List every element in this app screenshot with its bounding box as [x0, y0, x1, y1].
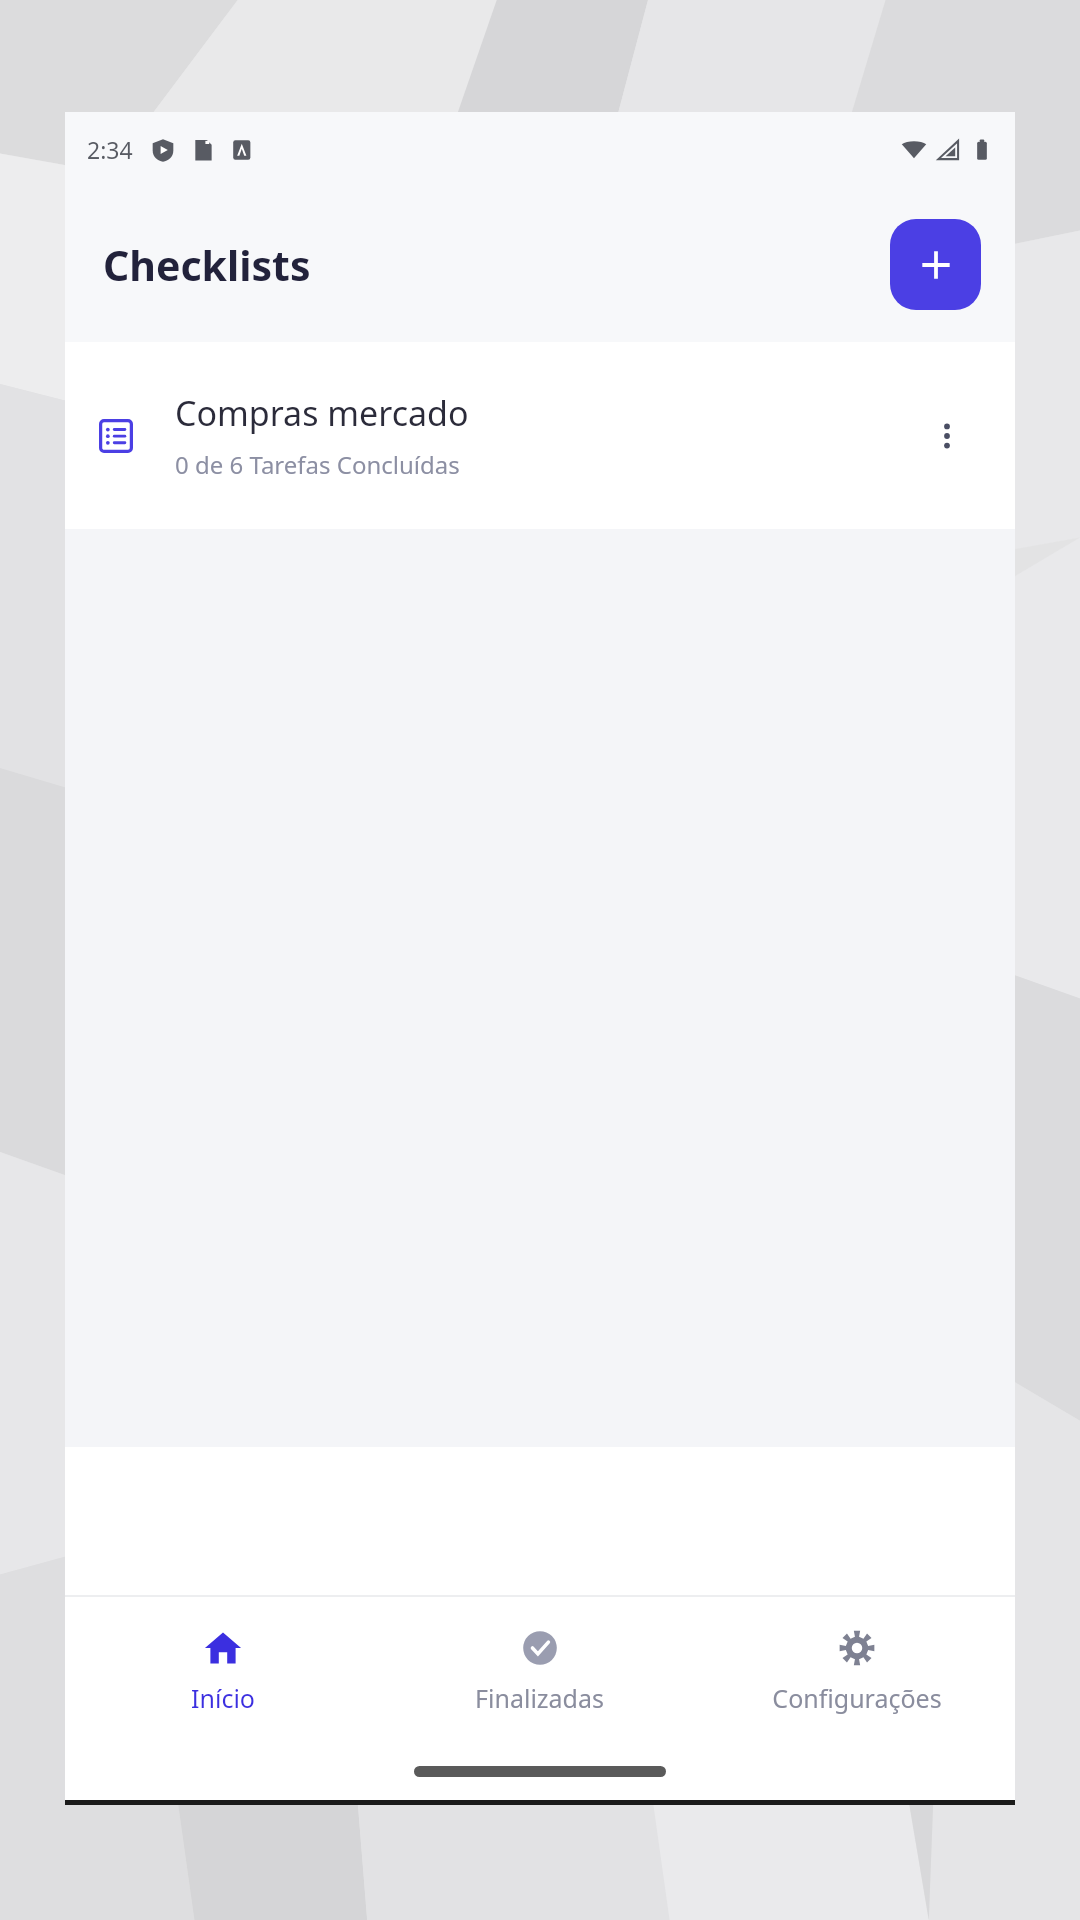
button[interactable]: Mais opções — [913, 402, 981, 470]
staticText: Compras mercado — [175, 390, 469, 436]
staticText: 0 de 6 Tarefas Concluídas — [175, 448, 460, 481]
staticText: Configurações — [772, 1681, 942, 1715]
button[interactable]: Compras mercado — [65, 342, 1015, 529]
staticText: Finalizadas — [475, 1681, 604, 1715]
staticText: 2:34 — [87, 134, 133, 165]
button[interactable]: Adicionar checklist — [890, 219, 981, 310]
button[interactable]: Finalizadas — [381, 1623, 698, 1719]
staticText: Início — [191, 1681, 255, 1715]
staticText: Checklists — [103, 237, 311, 293]
button[interactable]: Início — [65, 1623, 381, 1719]
button[interactable]: Configurações — [698, 1623, 1015, 1719]
